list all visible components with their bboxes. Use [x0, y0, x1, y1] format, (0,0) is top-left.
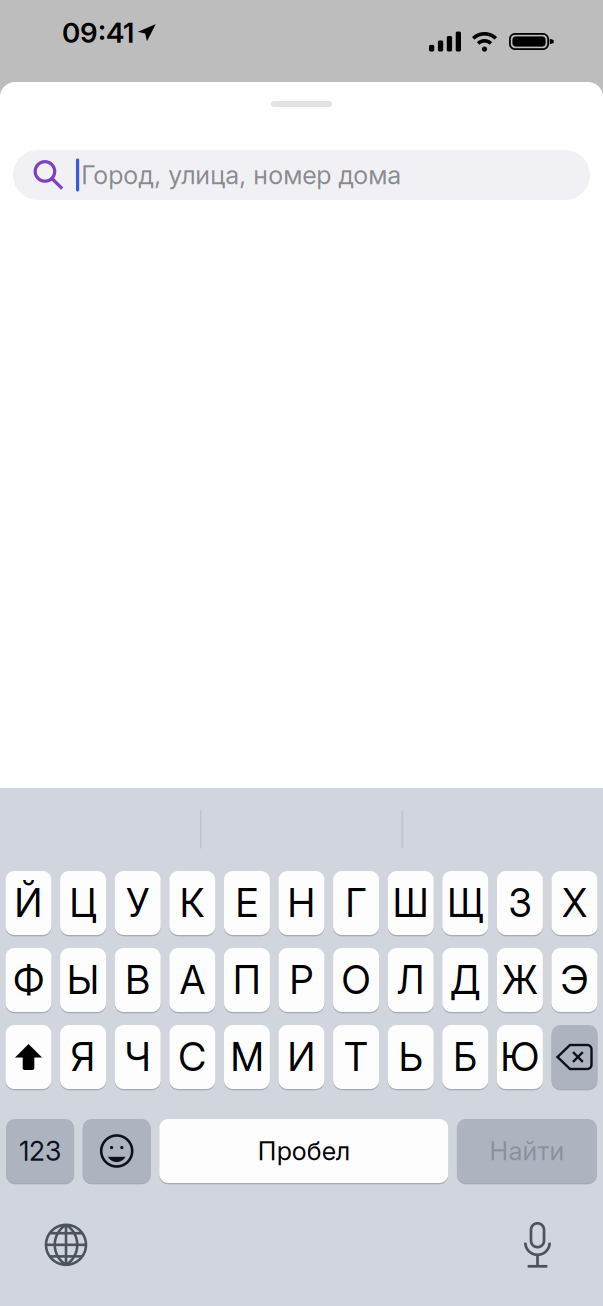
staticText: Ц — [70, 880, 97, 926]
button[interactable]: Ч — [115, 1025, 161, 1090]
staticText: Д — [450, 957, 480, 1003]
staticText: Город, улица, номер дома — [81, 160, 401, 190]
button[interactable]: Г — [333, 871, 379, 936]
button[interactable]: Н — [278, 871, 324, 936]
button[interactable]: У — [115, 871, 161, 936]
button[interactable]: В — [115, 948, 161, 1013]
staticText: Ы — [67, 957, 99, 1003]
button[interactable]: Э — [551, 948, 597, 1013]
staticText: Щ — [447, 880, 483, 926]
button[interactable]: И — [278, 1025, 324, 1090]
button[interactable]: Й — [5, 871, 51, 936]
button[interactable]: Ж — [497, 948, 543, 1013]
button[interactable]: П — [224, 948, 270, 1013]
staticText: И — [287, 1034, 315, 1080]
button[interactable]: Л — [388, 948, 434, 1013]
staticText: Й — [14, 880, 42, 926]
staticText: Ш — [393, 880, 429, 926]
button[interactable]: Щ — [442, 871, 488, 936]
button[interactable]: Emoji — [83, 1119, 151, 1184]
button[interactable]: Next keyboard — [36, 1215, 96, 1275]
button[interactable]: Ю — [497, 1025, 543, 1090]
button[interactable]: К — [169, 871, 215, 936]
button[interactable]: О — [333, 948, 379, 1013]
staticText: Ж — [502, 957, 538, 1003]
button[interactable]: С — [169, 1025, 215, 1090]
staticText: Ф — [13, 957, 44, 1003]
button[interactable]: Р — [278, 948, 324, 1013]
staticText: Р — [289, 957, 313, 1003]
button[interactable]: Найти — [457, 1119, 597, 1184]
staticText: Т — [344, 1034, 368, 1080]
staticText: М — [230, 1034, 263, 1080]
button[interactable]: Ы — [60, 948, 106, 1013]
staticText: С — [178, 1034, 206, 1080]
button[interactable]: 123 — [6, 1119, 74, 1184]
button[interactable]: Shift — [5, 1025, 51, 1090]
staticText: 123 — [19, 1135, 61, 1167]
staticText: О — [342, 957, 371, 1003]
button[interactable]: Б — [442, 1025, 488, 1090]
button[interactable]: Е — [224, 871, 270, 936]
button[interactable]: Ь — [388, 1025, 434, 1090]
button[interactable]: Т — [333, 1025, 379, 1090]
button[interactable]: Я — [60, 1025, 106, 1090]
staticText: Ь — [399, 1034, 423, 1080]
button[interactable]: Ц — [60, 871, 106, 936]
staticText: Х — [562, 880, 587, 926]
staticText: Ч — [125, 1034, 151, 1080]
button[interactable]: Х — [551, 871, 597, 936]
button[interactable]: М — [224, 1025, 270, 1090]
staticText: З — [508, 880, 531, 926]
staticText: П — [233, 957, 261, 1003]
staticText: Я — [71, 1034, 96, 1080]
button[interactable]: Delete — [551, 1025, 597, 1090]
staticText: Б — [453, 1034, 477, 1080]
staticText: Э — [560, 957, 588, 1003]
staticText: Н — [287, 880, 315, 926]
staticText: Г — [346, 880, 367, 926]
staticText: У — [126, 880, 149, 926]
staticText: Найти — [489, 1136, 564, 1166]
button[interactable]: А — [169, 948, 215, 1013]
button[interactable]: Пробел — [159, 1119, 448, 1184]
staticText: А — [180, 957, 205, 1003]
staticText: 09:41 — [62, 16, 134, 49]
button[interactable]: Д — [442, 948, 488, 1013]
button[interactable]: Ш — [388, 871, 434, 936]
staticText: В — [125, 957, 150, 1003]
staticText: Пробел — [258, 1136, 350, 1166]
button[interactable]: З — [497, 871, 543, 936]
staticText: Е — [235, 880, 258, 926]
button[interactable]: Dictation — [513, 1213, 562, 1276]
staticText: Л — [397, 957, 425, 1003]
staticText: К — [180, 880, 205, 926]
staticText: Ю — [500, 1034, 539, 1080]
button[interactable]: Ф — [5, 948, 51, 1013]
